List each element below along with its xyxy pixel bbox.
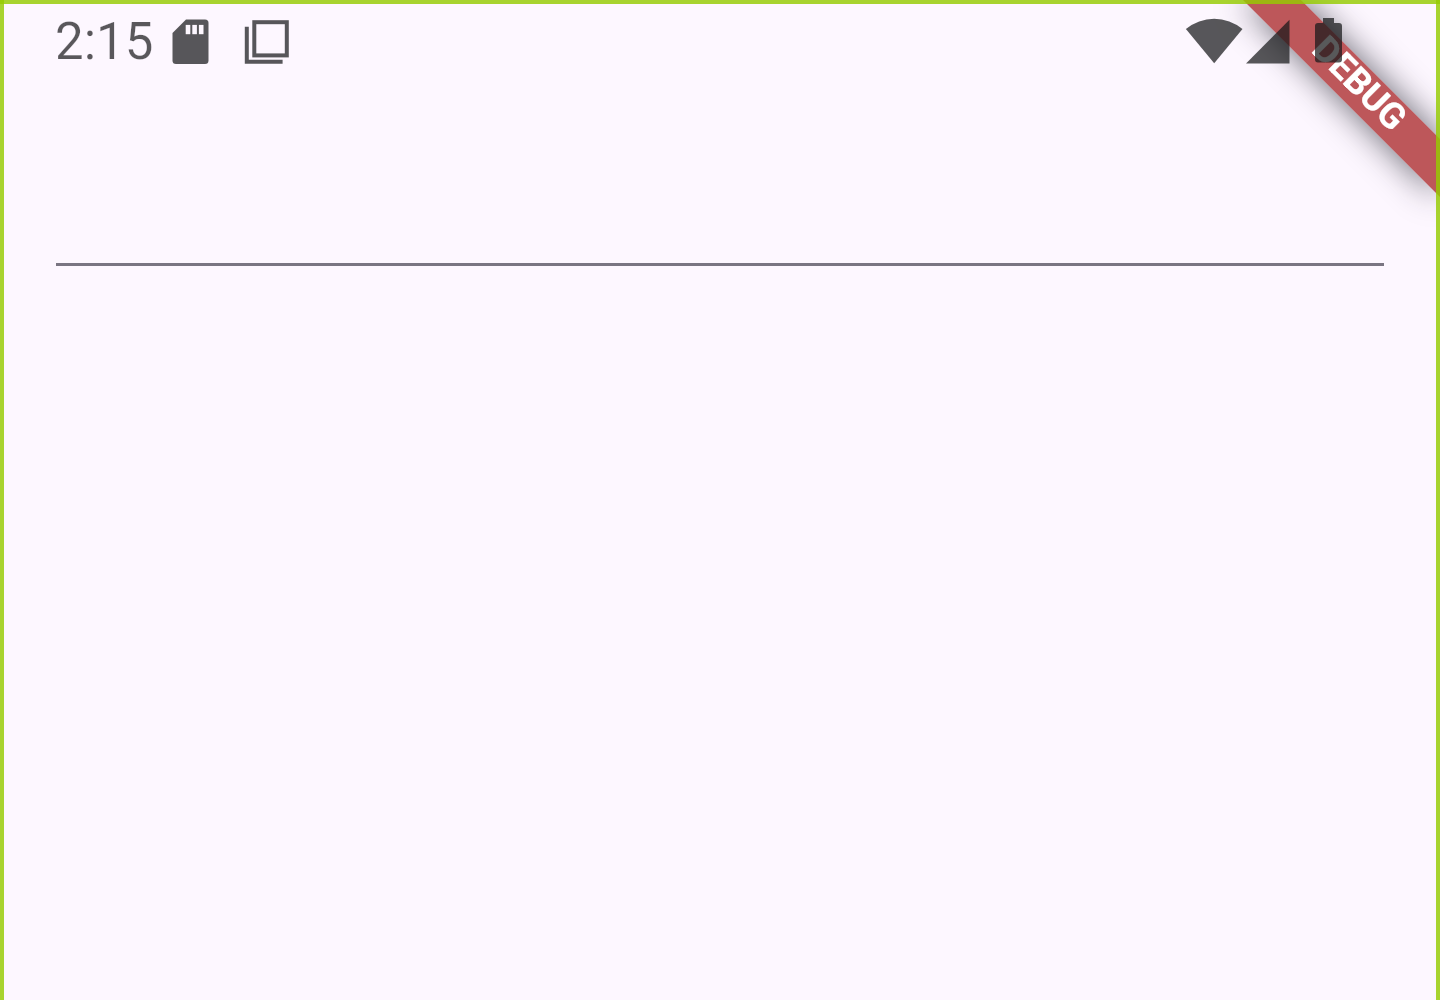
other: Mobile signal xyxy=(1245,19,1291,65)
other: Screenshot xyxy=(244,19,290,65)
other: SD card xyxy=(172,19,210,65)
other: Wi-Fi signal xyxy=(1187,18,1243,65)
other: Battery xyxy=(1314,17,1344,65)
